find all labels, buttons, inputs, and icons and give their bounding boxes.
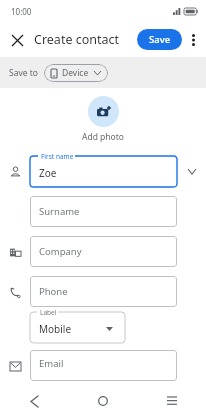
staticText: Zoe — [39, 166, 57, 180]
staticText: Label — [40, 308, 57, 317]
staticText: Phone — [39, 285, 68, 298]
staticText: Save — [149, 33, 171, 46]
button[interactable]: More options — [182, 28, 205, 51]
button[interactable]: Label — [30, 312, 125, 343]
button[interactable]: First name — [30, 156, 177, 187]
button[interactable]: Company — [30, 236, 177, 267]
button[interactable]: Add photo — [88, 96, 119, 127]
button[interactable]: Expand name fields — [183, 162, 201, 180]
button[interactable]: Back — [0, 390, 68, 412]
button[interactable]: Home — [68, 390, 137, 412]
button[interactable]: Email — [30, 350, 177, 381]
staticText: Surname — [39, 205, 80, 218]
button[interactable]: Recent apps — [137, 390, 206, 412]
staticText: First name — [41, 152, 74, 161]
staticText: Email — [39, 357, 64, 370]
staticText: Save to — [9, 67, 38, 79]
staticText: Add photo — [82, 131, 124, 143]
staticText: Device — [62, 67, 89, 79]
staticText: Mobile — [39, 322, 72, 336]
staticText: Create contact — [34, 31, 120, 48]
staticText: Company — [39, 245, 82, 258]
button[interactable]: Phone — [30, 276, 177, 307]
button[interactable]: Device — [44, 64, 108, 82]
button[interactable]: Save — [137, 29, 182, 50]
button[interactable]: Close — [4, 27, 30, 53]
button[interactable]: Surname — [30, 196, 177, 227]
staticText: 10:00 — [11, 6, 32, 17]
